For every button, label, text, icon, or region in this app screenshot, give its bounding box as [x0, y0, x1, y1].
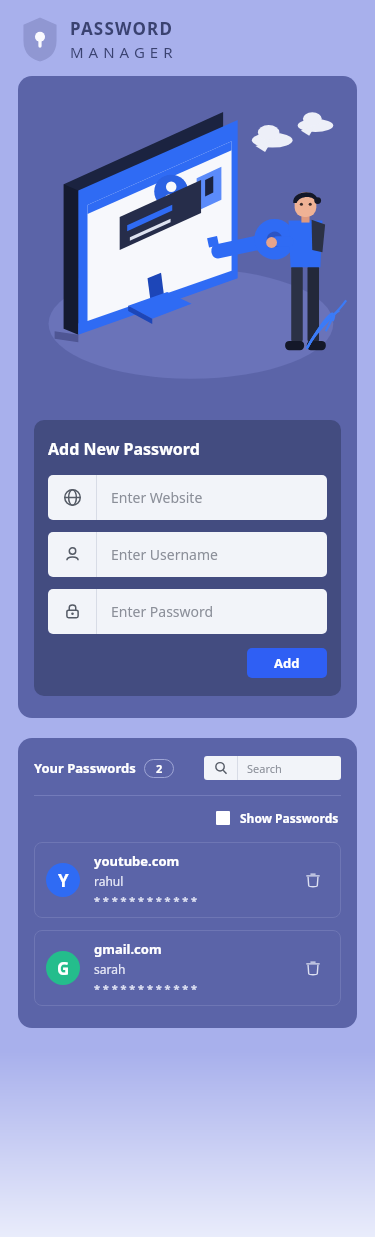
staticText: 2 — [156, 761, 163, 776]
staticText: PASSWORD — [70, 17, 174, 40]
staticText: * * * * * * * * * * * * — [94, 893, 198, 908]
staticText: Show Passwords — [240, 810, 339, 826]
button[interactable]: Enter Password — [48, 589, 327, 634]
button[interactable]: Enter Website — [48, 475, 327, 520]
button[interactable]: Delete password — [297, 864, 329, 896]
staticText: Your Passwords — [34, 759, 136, 777]
staticText: youtube.com — [94, 852, 180, 870]
button[interactable]: Enter Username — [48, 532, 327, 577]
staticText: gmail.com — [94, 940, 162, 958]
button[interactable]: G — [34, 930, 341, 1006]
button[interactable]: Add — [247, 648, 327, 678]
staticText: Search — [247, 761, 282, 776]
staticText: MANAGER — [70, 42, 178, 62]
staticText: * * * * * * * * * * * * — [94, 981, 198, 996]
staticText: Y — [58, 869, 69, 892]
button[interactable]: Delete password — [297, 952, 329, 984]
button[interactable]: Show Passwords — [214, 808, 341, 828]
staticText: Add New Password — [48, 438, 200, 460]
staticText: sarah — [94, 961, 126, 977]
button[interactable]: Y — [34, 842, 341, 918]
staticText: Add — [274, 654, 300, 672]
staticText: G — [57, 957, 70, 980]
staticText: Enter Username — [111, 545, 218, 564]
button[interactable]: Search — [204, 756, 341, 780]
staticText: rahul — [94, 873, 124, 889]
staticText: Enter Website — [111, 488, 203, 507]
staticText: Enter Password — [111, 602, 214, 621]
